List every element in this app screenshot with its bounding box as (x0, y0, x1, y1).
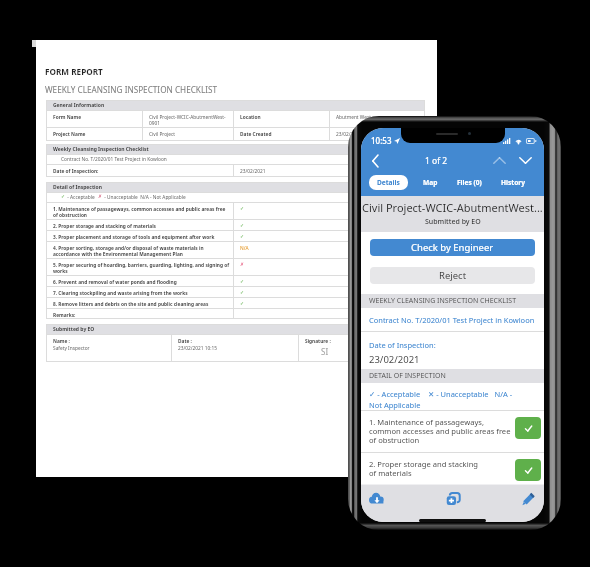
staticText: Date of Inspection: (53, 168, 99, 175)
staticText: Date : (178, 338, 192, 345)
staticText: SI (321, 346, 329, 357)
staticText: 23/02/2021 (369, 353, 420, 366)
button[interactable]: History (497, 175, 530, 190)
button[interactable]: Reject (370, 267, 535, 284)
staticText: 1 of 2 (425, 155, 448, 167)
staticText: 3. Proper placement and storage of tools… (53, 234, 215, 241)
staticText: 1. Maintenance of passageways, common ac… (369, 417, 512, 446)
staticText: Reject (439, 269, 467, 282)
staticText: N/A (240, 245, 249, 252)
button[interactable]: Download (366, 488, 388, 510)
staticText: 5. Proper securing of hoarding, barriers… (53, 262, 230, 274)
staticText: Location (240, 114, 261, 121)
staticText: - Unacceptable N/A - Not Applicable (103, 194, 186, 201)
button[interactable]: Add copy (442, 488, 464, 510)
staticText: ✓ (240, 206, 245, 212)
staticText: Civil Project-WCIC-AbutmentWest... (362, 200, 543, 215)
button[interactable]: Files (0) (453, 175, 486, 190)
staticText: 6. Prevent and removal of water ponds an… (53, 279, 177, 286)
staticText: Civil Project-WCIC-AbutmentWest- 0901 (149, 114, 226, 126)
staticText: Check by Engineer (411, 241, 494, 254)
staticText: 10:53 (371, 135, 392, 146)
staticText: History (501, 178, 526, 187)
staticText: Details (377, 178, 400, 187)
staticText: Map (423, 178, 438, 187)
staticText: Weekly Cleansing Inspection Checklist (53, 146, 149, 153)
staticText: ✓ (61, 194, 66, 200)
button[interactable]: Check by Engineer (370, 239, 535, 256)
staticText: 23/02/2021 10:15 (336, 131, 376, 138)
staticText: General Information (53, 102, 105, 109)
button[interactable]: Details (369, 175, 408, 190)
staticText: 23/02/2021 10:15 (178, 345, 218, 352)
staticText: Project Name (53, 131, 86, 138)
button[interactable]: Contract No. T/2020/01 Test Project in K… (361, 308, 544, 331)
staticText: WEEKLY CLEANSING INSPECTION CHECKLIST (369, 296, 517, 306)
staticText: ✓ (240, 279, 245, 285)
staticText: Remarks: (53, 312, 76, 318)
staticText: ✗ (240, 262, 245, 268)
staticText: Contract No. T/2020/01 Test Project in K… (369, 315, 535, 325)
staticText: ✓ (240, 223, 245, 229)
staticText: FORM REPORT (45, 66, 103, 77)
staticText: - Acceptable (66, 194, 98, 201)
staticText: ✓ (240, 290, 245, 296)
staticText: 23/02/2021 (240, 168, 266, 175)
staticText: 7. Clearing stockpiling and waste arisin… (53, 290, 188, 297)
staticText: Abutment West (336, 114, 371, 121)
staticText: WEEKLY CLEANSING INSPECTION CHECKLIST (45, 84, 218, 95)
staticText: Civil Project (149, 131, 176, 138)
button[interactable]: Previous (488, 150, 510, 171)
staticText: Submitted by EO (425, 217, 481, 227)
button[interactable]: Next (514, 150, 536, 171)
button[interactable]: 1. Maintenance of passageways, common ac… (361, 411, 544, 452)
staticText: Signature : (305, 338, 331, 345)
staticText: ✓ (240, 301, 245, 307)
button[interactable]: Map (419, 175, 442, 190)
staticText: 8. Remove litters and debris on the site… (53, 301, 209, 308)
staticText: Date of Inspection: (369, 340, 436, 350)
button[interactable]: 2. Proper storage and stacking of materi… (361, 453, 544, 484)
staticText: Name : (53, 338, 70, 345)
staticText: Contract No. T/2020/01 Test Project in K… (61, 156, 167, 163)
staticText: Submitted by EO (53, 326, 95, 333)
staticText: Date Created (240, 131, 272, 138)
staticText: ✓ (240, 234, 245, 240)
staticText: ✓ - Acceptable ✕ - Unacceptable N/A - No… (369, 389, 540, 410)
staticText: Safety Inspector (53, 345, 90, 352)
staticText: 2. Proper storage and stacking of materi… (369, 459, 512, 479)
staticText: 1. Maintenance of passageways, common ac… (53, 206, 226, 218)
staticText: 2. Proper storage and stacking of materi… (53, 223, 157, 230)
staticText: ✗ (98, 194, 103, 200)
button[interactable]: Back (365, 150, 385, 171)
staticText: 4. Proper sorting, storage and/or dispos… (53, 245, 204, 257)
staticText: DETAIL OF INSPECTION (369, 371, 446, 381)
button[interactable]: Edit (517, 488, 539, 510)
staticText: Files (0) (457, 178, 482, 187)
staticText: Form Name (53, 114, 82, 121)
staticText: Detail of Inspection (53, 184, 102, 191)
